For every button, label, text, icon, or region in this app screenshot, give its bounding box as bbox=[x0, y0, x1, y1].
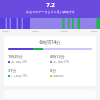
staticText: 02:00 bbox=[61, 29, 68, 32]
button[interactable]: 1時25分 bbox=[8, 54, 50, 64]
staticText: あなたのデータよりも良い睡眠です bbox=[26, 10, 75, 14]
staticText: 深い睡眠 67% bbox=[53, 60, 70, 64]
staticText: 7.2 bbox=[46, 1, 55, 9]
staticText: 覚醒時間 bbox=[53, 74, 64, 77]
staticText: 00:00 bbox=[32, 29, 39, 32]
staticText: 0分 bbox=[50, 68, 57, 73]
button[interactable]: 4時12分 bbox=[50, 54, 92, 64]
staticText: レム睡眠 10% bbox=[11, 74, 28, 78]
button[interactable]: 0分 bbox=[50, 68, 92, 77]
button[interactable]: 37分 bbox=[8, 68, 50, 78]
staticText: 4時12分 bbox=[50, 54, 65, 59]
staticText: 1時25分 bbox=[8, 54, 23, 59]
button[interactable]: 6時間14分 bbox=[4, 36, 96, 86]
staticText: 37分 bbox=[8, 68, 17, 73]
staticText: 04:00 bbox=[91, 29, 98, 32]
staticText: 浅い睡眠 23% bbox=[11, 60, 28, 64]
staticText: 22:00 bbox=[2, 29, 9, 32]
staticText: 6時間14分 bbox=[8, 39, 92, 45]
button[interactable]: Sleep stages chart bbox=[0, 18, 100, 29]
